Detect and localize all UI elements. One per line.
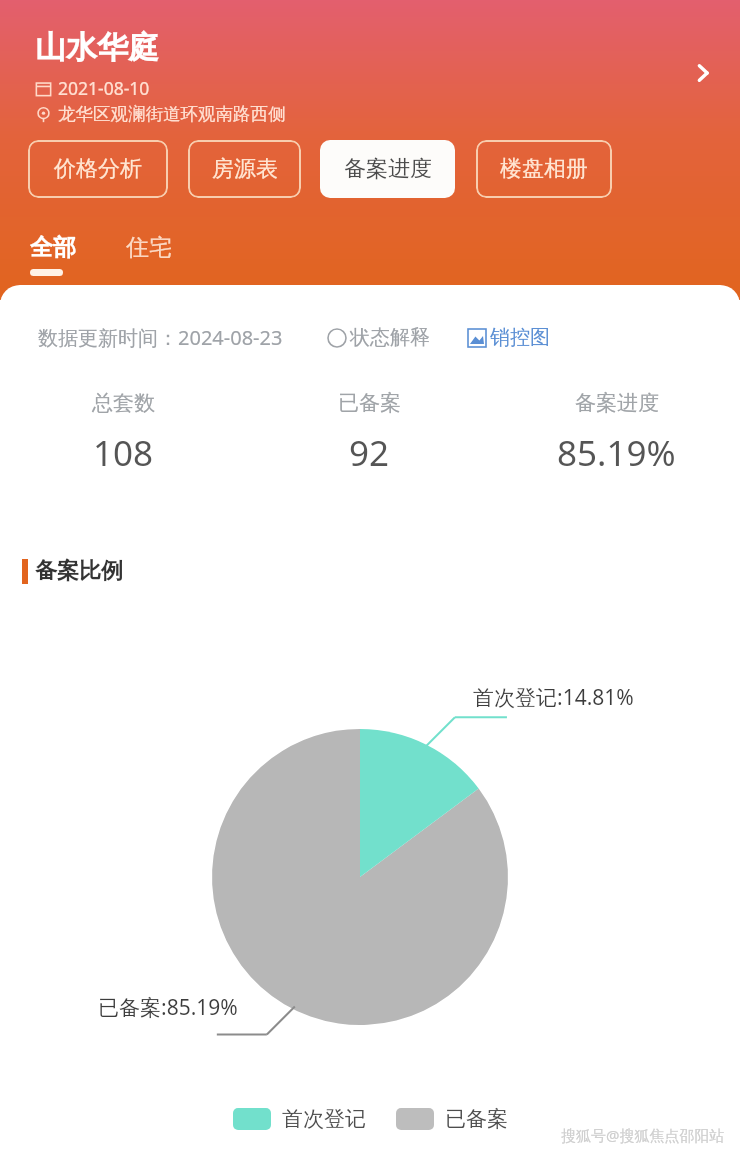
button[interactable]: Open project detail	[680, 50, 726, 96]
button[interactable]: 住宅	[114, 231, 184, 264]
staticText: 数据更新时间：2024-08-23	[38, 324, 283, 351]
staticText: 首次登记:14.81%	[473, 683, 634, 712]
staticText: 全部	[30, 233, 76, 262]
staticText: 备案比例	[35, 557, 123, 585]
staticText: 备案进度	[344, 155, 432, 183]
staticText: 价格分析	[54, 155, 142, 183]
staticText: 已备案	[445, 1106, 508, 1132]
staticText: 首次登记	[282, 1106, 366, 1132]
staticText: 搜狐号@搜狐焦点邵阳站	[561, 1125, 725, 1145]
staticText: 备案进度	[575, 390, 659, 416]
staticText: 房源表	[212, 155, 278, 183]
staticText: 龙华区观澜街道环观南路西侧	[58, 103, 286, 125]
staticText: 已备案:85.19%	[98, 993, 238, 1022]
staticText: 销控图	[490, 325, 550, 350]
staticText: 92	[349, 429, 390, 477]
button[interactable]: 楼盘相册	[476, 140, 612, 198]
staticText: 山水华庭	[35, 28, 159, 67]
staticText: 总套数	[92, 390, 155, 416]
staticText: 85.19%	[557, 429, 676, 477]
staticText: 已备案	[338, 390, 401, 416]
staticText: 108	[93, 429, 154, 477]
button[interactable]: 全部	[18, 231, 88, 264]
staticText: 2021-08-10	[58, 76, 150, 100]
staticText: 楼盘相册	[500, 155, 588, 183]
staticText: 状态解释	[350, 325, 430, 350]
button[interactable]: 价格分析	[28, 140, 168, 198]
button[interactable]: 房源表	[188, 140, 301, 198]
staticText: 住宅	[126, 233, 172, 262]
button[interactable]: 备案进度	[320, 140, 455, 198]
button[interactable]: 销控图	[467, 325, 550, 350]
button[interactable]: 状态解释	[327, 325, 430, 350]
